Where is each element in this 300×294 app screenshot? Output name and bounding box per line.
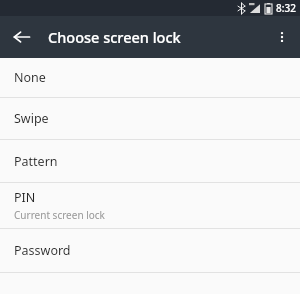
button[interactable]: PIN	[0, 183, 300, 228]
staticText: Swipe	[14, 110, 49, 127]
button[interactable]: Pattern	[0, 140, 300, 182]
staticText: Password	[14, 242, 71, 259]
staticText: Pattern	[14, 153, 58, 170]
button[interactable]: None	[0, 58, 300, 97]
staticText: 8:32	[276, 1, 296, 15]
button[interactable]: Swipe	[0, 98, 300, 139]
button[interactable]: More options	[266, 21, 298, 53]
button[interactable]: Password	[0, 229, 300, 272]
staticText: Current screen lock	[14, 208, 105, 222]
button[interactable]: Navigate up	[6, 21, 38, 53]
staticText: PIN	[14, 189, 36, 206]
staticText: Choose screen lock	[48, 27, 181, 47]
staticText: None	[14, 69, 46, 86]
